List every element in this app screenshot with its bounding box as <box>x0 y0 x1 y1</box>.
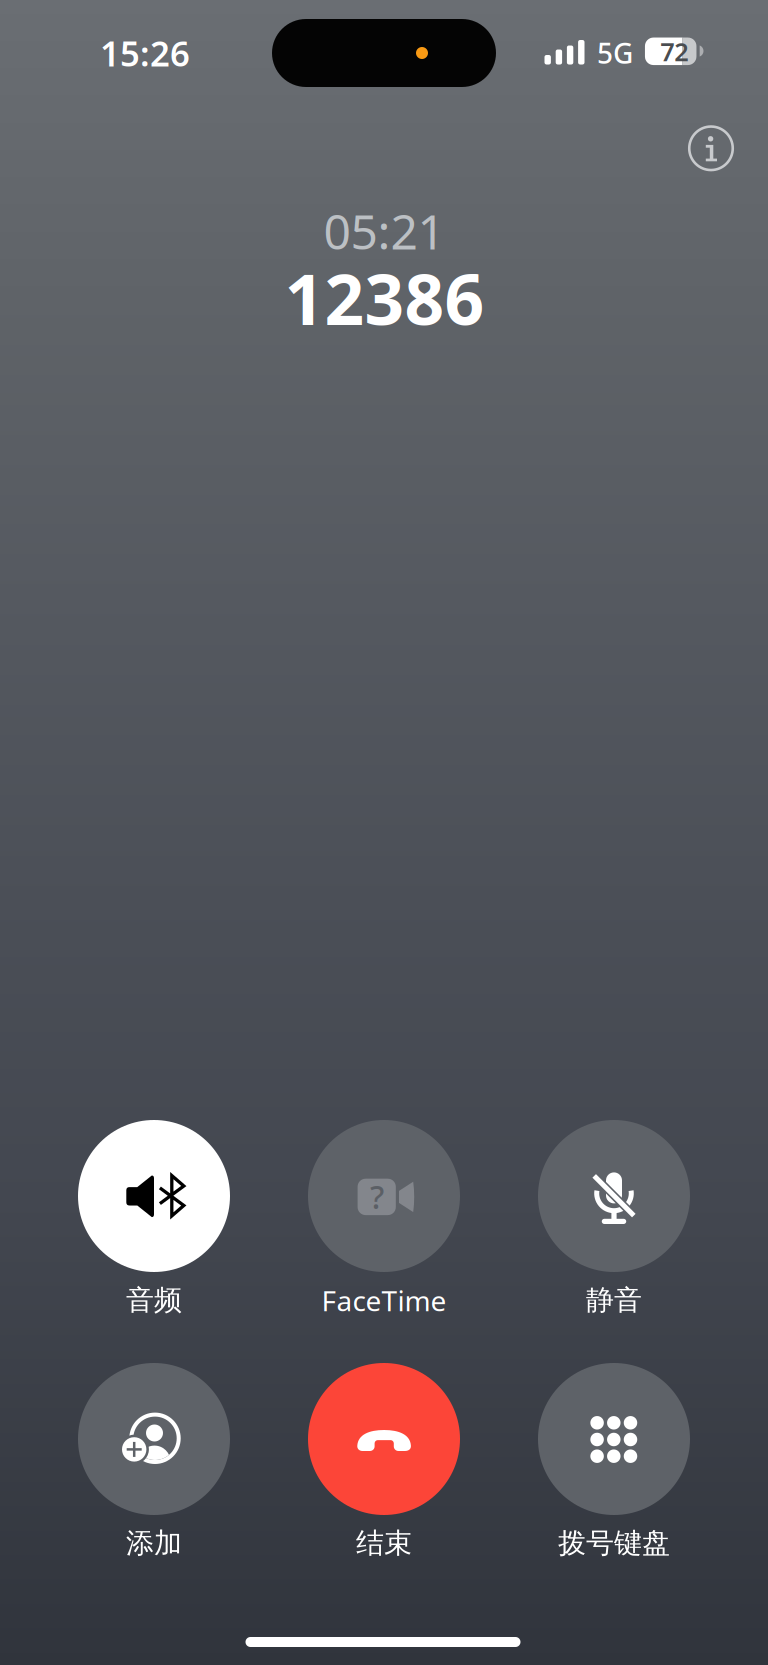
staticText: 静音 <box>586 1283 642 1317</box>
staticText: FaceTime <box>321 1282 446 1319</box>
button[interactable]: 拨号键盘 <box>509 1363 719 1577</box>
staticText: 拨号键盘 <box>558 1526 670 1560</box>
staticText: 72 <box>660 34 688 68</box>
button[interactable]: 结束 <box>279 1363 489 1577</box>
button[interactable]: 音频 <box>49 1120 259 1334</box>
button[interactable]: 静音 <box>509 1120 719 1334</box>
staticText: 音频 <box>126 1283 182 1317</box>
button[interactable]: ? <box>279 1120 489 1334</box>
staticText: 12386 <box>284 252 484 344</box>
staticText: 结束 <box>356 1526 412 1560</box>
staticText: 5G <box>597 34 633 72</box>
button[interactable]: 添加 <box>49 1363 259 1577</box>
staticText: 15:26 <box>100 30 190 76</box>
button[interactable]: Call information <box>683 120 739 176</box>
staticText: ? <box>370 1175 384 1218</box>
staticText: 05:21 <box>323 199 444 263</box>
staticText: 添加 <box>126 1526 182 1560</box>
